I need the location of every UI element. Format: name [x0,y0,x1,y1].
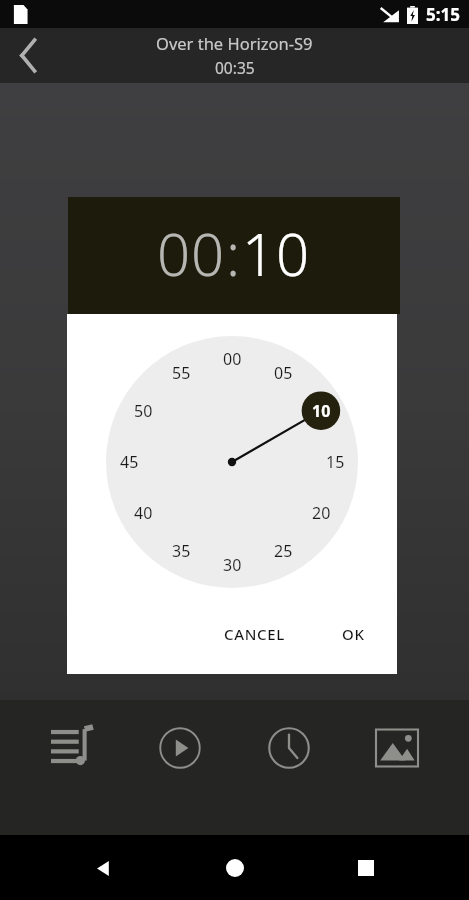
staticText: 35 [172,540,191,562]
staticText: 10 [312,400,331,422]
staticText: 15 [326,451,345,473]
staticText: 55 [172,362,191,384]
button[interactable]: Recents [338,840,394,896]
staticText: 5:15 [426,3,460,26]
staticText: 45 [120,451,139,473]
button[interactable]: Timer [253,712,325,784]
staticText: 05 [274,362,293,384]
staticText: 00 [223,348,242,370]
staticText: 40 [134,502,153,524]
staticText: 30 [223,554,242,576]
staticText: 00 [157,214,226,293]
button[interactable]: Home [207,840,263,896]
button[interactable]: OK [332,616,375,652]
staticText: CANCEL [224,624,286,644]
button[interactable]: Playlist [36,712,108,784]
button[interactable]: Back [0,28,56,83]
staticText: 00:35 [215,57,255,78]
staticText: 25 [274,540,293,562]
staticText: OK [342,624,365,644]
button[interactable]: Gallery [361,712,433,784]
staticText: 50 [134,400,153,422]
button[interactable]: Play [144,712,216,784]
staticText: 20 [312,502,331,524]
button[interactable]: Back [75,840,131,896]
button[interactable]: CANCEL [214,616,296,652]
staticText: 10 [242,214,311,293]
staticText: Over the Horizon-S9 [156,32,313,54]
staticText: : [226,214,242,293]
